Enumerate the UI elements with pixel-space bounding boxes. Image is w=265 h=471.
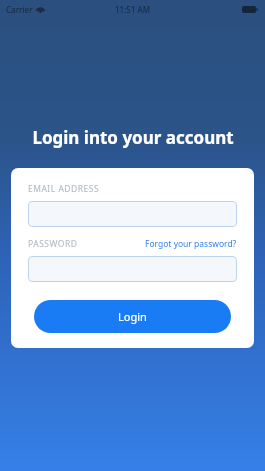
button[interactable]: Login — [34, 300, 231, 333]
staticText: 11:51 AM — [115, 4, 151, 15]
staticText: EMAIL ADDRESS — [28, 183, 100, 195]
staticText: Carrier — [6, 4, 33, 15]
staticText: Login — [118, 309, 147, 324]
button[interactable]: Forgot your password? — [145, 238, 237, 250]
button[interactable]: Text input field — [28, 256, 237, 282]
staticText: PASSWORD — [28, 238, 78, 250]
button[interactable]: Text input field — [28, 201, 237, 227]
staticText: Login into your account — [32, 126, 234, 149]
staticText: Forgot your password? — [145, 238, 237, 250]
